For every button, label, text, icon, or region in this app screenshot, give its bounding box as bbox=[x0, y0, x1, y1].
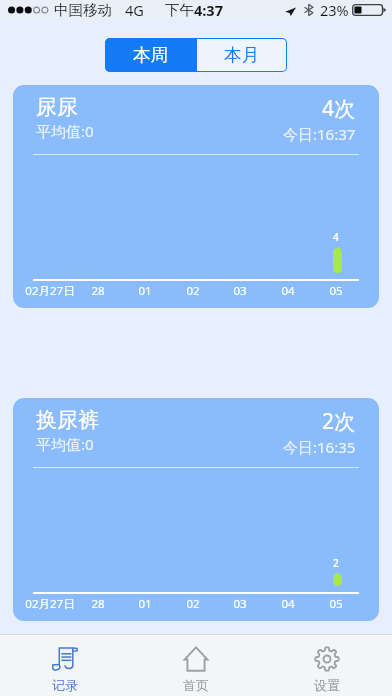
staticText: 本周 bbox=[133, 44, 168, 66]
staticText: 05 bbox=[329, 596, 343, 610]
staticText: 下午 bbox=[165, 1, 194, 19]
staticText: 03 bbox=[233, 283, 247, 297]
staticText: 04 bbox=[281, 596, 295, 610]
staticText: 02月27日 bbox=[25, 283, 75, 297]
staticText: 4 bbox=[333, 230, 339, 244]
staticText: 4:37 bbox=[194, 0, 223, 20]
staticText: 本月 bbox=[224, 44, 259, 66]
staticText: 02 bbox=[186, 596, 200, 610]
staticText: 4G bbox=[125, 0, 144, 20]
staticText: 今日:16:35 bbox=[283, 437, 356, 457]
staticText: 平均值:0 bbox=[36, 434, 94, 454]
staticText: 首页 bbox=[183, 677, 209, 693]
staticText: 28 bbox=[91, 596, 105, 610]
staticText: 尿尿 bbox=[36, 94, 78, 120]
button[interactable]: 记录 bbox=[0, 635, 130, 696]
staticText: 23% bbox=[320, 0, 349, 20]
staticText: 4次 bbox=[322, 94, 356, 123]
button[interactable]: 本周 bbox=[105, 38, 196, 72]
staticText: 中国移动 bbox=[54, 1, 112, 19]
staticText: 今日:16:37 bbox=[283, 124, 356, 144]
staticText: 28 bbox=[91, 283, 105, 297]
staticText: 设置 bbox=[314, 677, 340, 693]
staticText: 2次 bbox=[322, 407, 356, 436]
button[interactable]: 尿尿 bbox=[13, 85, 379, 308]
staticText: 05 bbox=[329, 283, 343, 297]
button[interactable]: 换尿裤 bbox=[13, 398, 379, 621]
staticText: 换尿裤 bbox=[36, 407, 99, 433]
staticText: 记录 bbox=[52, 677, 78, 693]
staticText: 02 bbox=[186, 283, 200, 297]
staticText: 01 bbox=[138, 283, 152, 297]
button[interactable]: 设置 bbox=[261, 635, 392, 696]
staticText: 03 bbox=[233, 596, 247, 610]
staticText: 04 bbox=[281, 283, 295, 297]
staticText: 01 bbox=[138, 596, 152, 610]
button[interactable]: 本月 bbox=[197, 39, 286, 71]
button[interactable]: 首页 bbox=[130, 635, 261, 696]
staticText: 2 bbox=[333, 556, 339, 570]
staticText: 02月27日 bbox=[25, 596, 75, 610]
staticText: 平均值:0 bbox=[36, 121, 94, 141]
